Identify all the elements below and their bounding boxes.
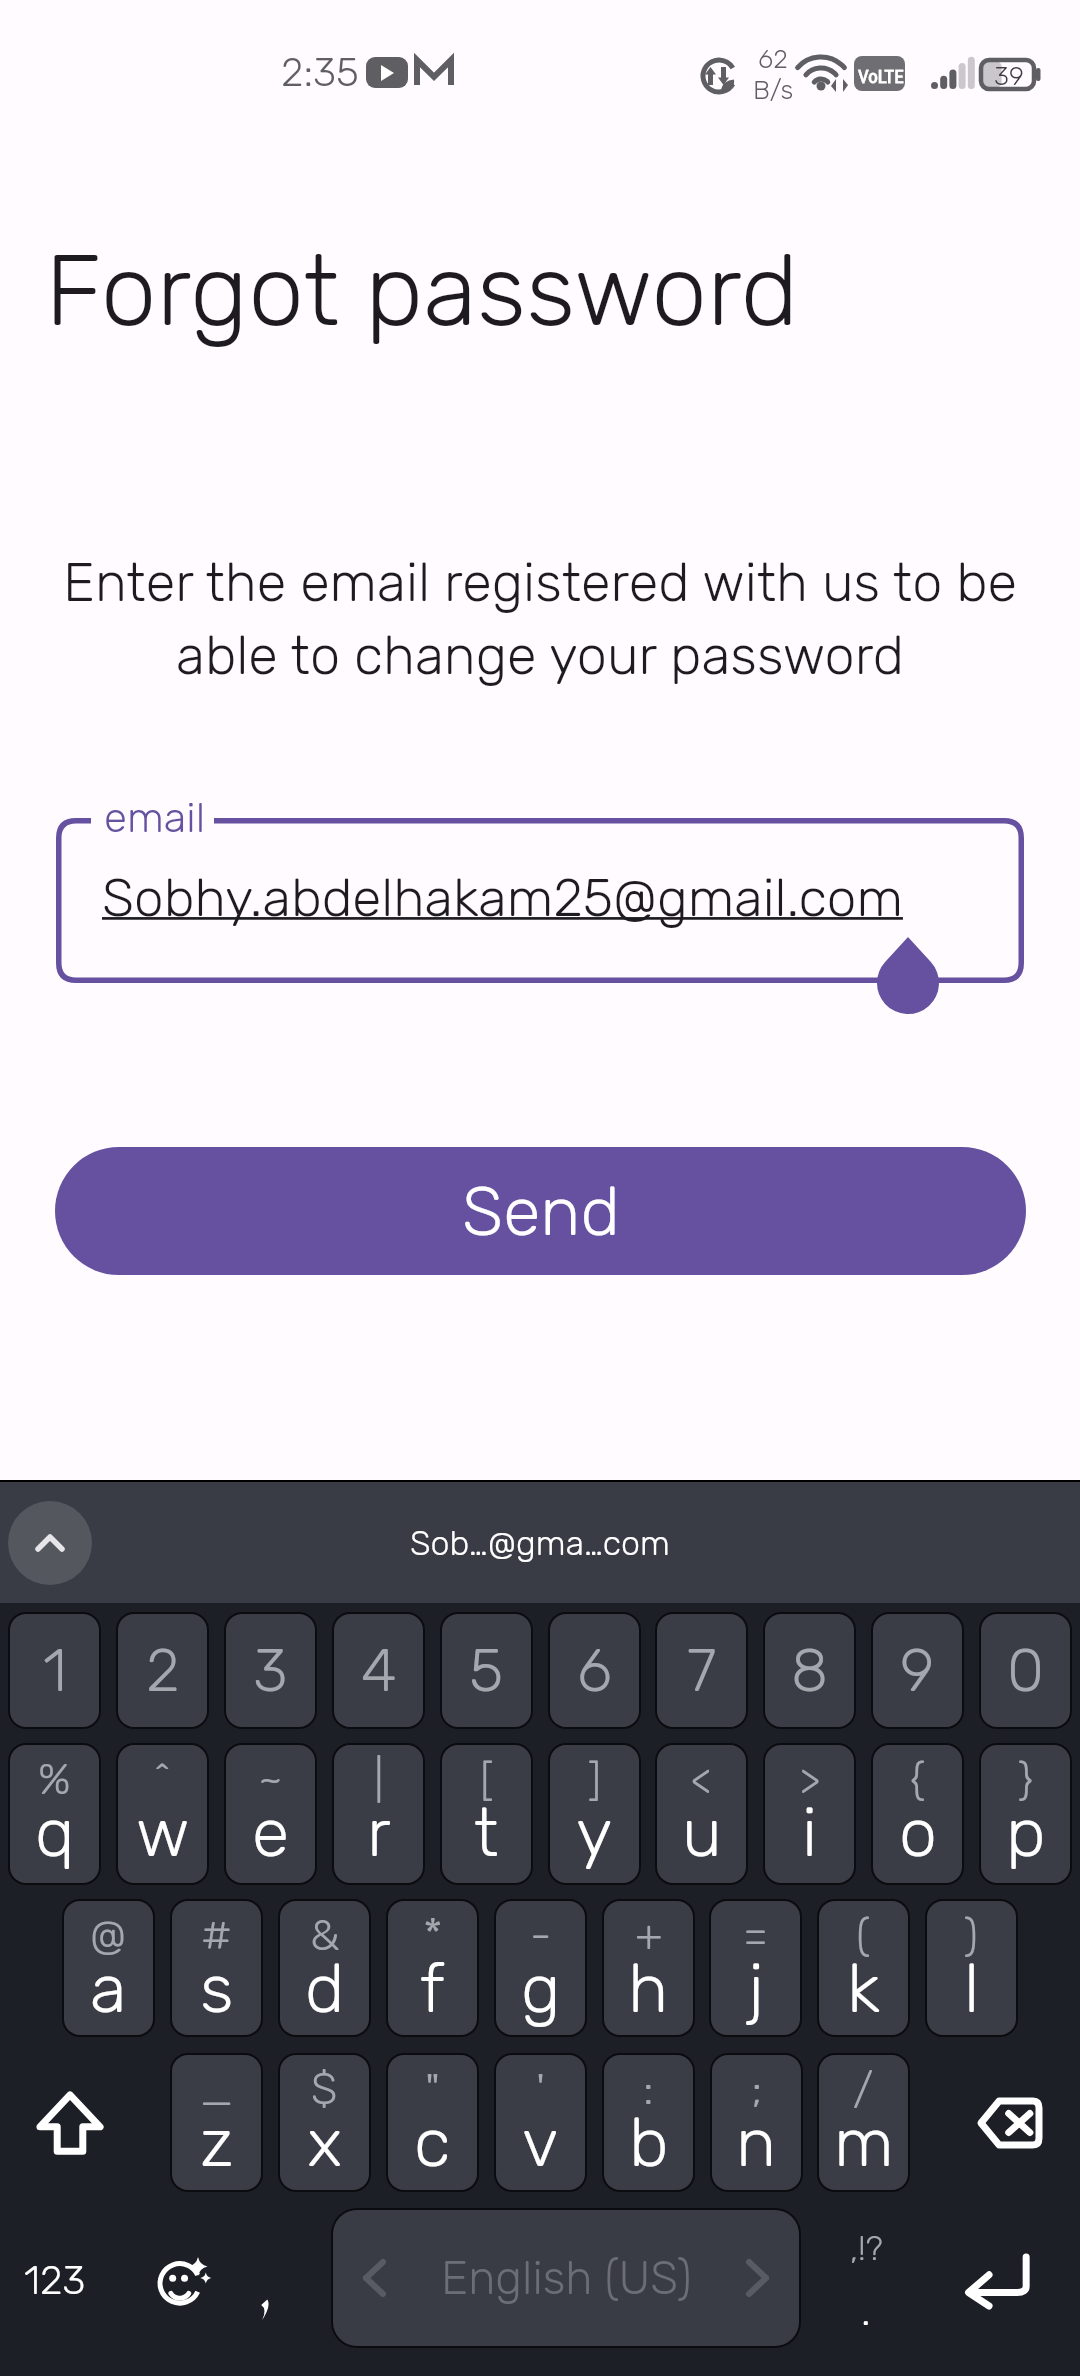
staticText: Sobhy.abdelhakam25@gmail.com [102,866,903,929]
staticText: g [521,1948,561,2029]
button[interactable]: ) [927,1901,1016,2035]
staticText: q [35,1792,75,1873]
staticText: 4 [361,1635,397,1706]
staticText: . [861,2288,871,2335]
button[interactable] [226,2253,306,2343]
button[interactable]: = [711,1901,800,2035]
button[interactable]: _ [172,2055,261,2190]
button[interactable]: < [657,1745,746,1883]
button[interactable]: Shift [0,2053,140,2192]
button[interactable]: 0 [981,1614,1070,1727]
button[interactable]: # [172,1901,261,2035]
staticText: 8 [791,1635,829,1706]
staticText: ~ [258,1753,283,1805]
button[interactable]: & [280,1901,369,2035]
button[interactable]: ' [496,2055,585,2190]
staticText: n [736,2102,777,2183]
button[interactable]: Enter [920,2210,1075,2350]
staticText: 2:35 [281,49,359,96]
staticText: " [425,2063,440,2115]
button[interactable]: 6 [550,1614,639,1727]
button[interactable]: / [819,2055,908,2190]
staticText: z [200,2102,234,2183]
button[interactable]: [ [442,1745,531,1883]
staticText: # [201,1909,232,1961]
button[interactable]: : [604,2055,693,2190]
button[interactable]: - [496,1901,585,2035]
staticText: email [104,793,206,843]
staticText: h [628,1948,669,2029]
staticText: - [530,1909,552,1961]
staticText: ] [588,1753,602,1805]
staticText: + [635,1909,663,1961]
staticText: k [847,1948,881,2029]
staticText: Send [462,1171,620,1252]
staticText: 62 [758,44,788,75]
button[interactable]: Emoji [130,2210,240,2350]
staticText: = [743,1909,769,1961]
staticText: { [910,1753,926,1805]
staticText: r [367,1792,391,1873]
staticText: VoLTE [858,65,904,87]
button[interactable]: $ [280,2055,369,2190]
button[interactable]: 1 [10,1614,99,1727]
staticText: 1 [43,1635,67,1706]
staticText: o [899,1792,937,1873]
button[interactable]: { [873,1745,962,1883]
staticText: B/s [753,75,794,106]
button[interactable]: 8 [765,1614,854,1727]
button[interactable]: 4 [334,1614,423,1727]
staticText: $ [311,2063,338,2115]
button[interactable]: Expand suggestions [8,1501,92,1585]
button[interactable]: Backspace [932,2053,1080,2192]
button[interactable]: > [765,1745,854,1883]
staticText: 9 [900,1635,935,1706]
button[interactable]: @ [64,1901,153,2035]
button[interactable]: ,!? [808,2210,920,2350]
staticText: 7 [687,1635,717,1706]
staticText: t [474,1792,499,1873]
staticText: f [420,1948,445,2029]
button[interactable]: ; [712,2055,801,2190]
staticText: / [853,2063,874,2115]
button[interactable]: 5 [442,1614,531,1727]
staticText: ) [964,1909,979,1961]
staticText: ' [536,2063,546,2115]
button[interactable]: % [10,1745,99,1883]
button[interactable]: ( [819,1901,908,2035]
button[interactable]: ] [550,1745,639,1883]
staticText: _ [200,2063,234,2115]
button[interactable]: 7 [657,1614,746,1727]
staticText: d [305,1948,345,2029]
button[interactable]: | [334,1745,423,1883]
button[interactable]: } [981,1745,1070,1883]
staticText: Forgot password [45,231,799,350]
staticText: y [576,1792,613,1873]
button[interactable] [56,818,1024,983]
staticText: ; [751,2063,763,2115]
button[interactable]: 3 [226,1614,315,1727]
button[interactable]: ^ [118,1745,207,1883]
button[interactable]: 2 [118,1614,207,1727]
button[interactable]: * [388,1901,477,2035]
staticText: ,!? [850,2228,883,2268]
staticText: c [414,2102,451,2183]
staticText: 5 [469,1635,504,1706]
staticText: j [748,1948,764,2029]
staticText: 0 [1007,1635,1044,1706]
staticText: ( [856,1909,871,1961]
staticText: i [802,1792,818,1873]
button[interactable]: " [388,2055,477,2190]
staticText: e [252,1792,290,1873]
staticText: p [1006,1792,1046,1873]
staticText: v [522,2102,559,2183]
staticText: & [310,1909,340,1961]
button[interactable]: + [604,1901,693,2035]
button[interactable]: English (US) [333,2210,799,2346]
button[interactable]: Send [55,1147,1026,1275]
button[interactable]: 9 [873,1614,962,1727]
staticText: @ [90,1909,127,1961]
button[interactable]: 123 [0,2210,110,2350]
staticText: a [90,1948,127,2029]
button[interactable]: ~ [226,1745,315,1883]
